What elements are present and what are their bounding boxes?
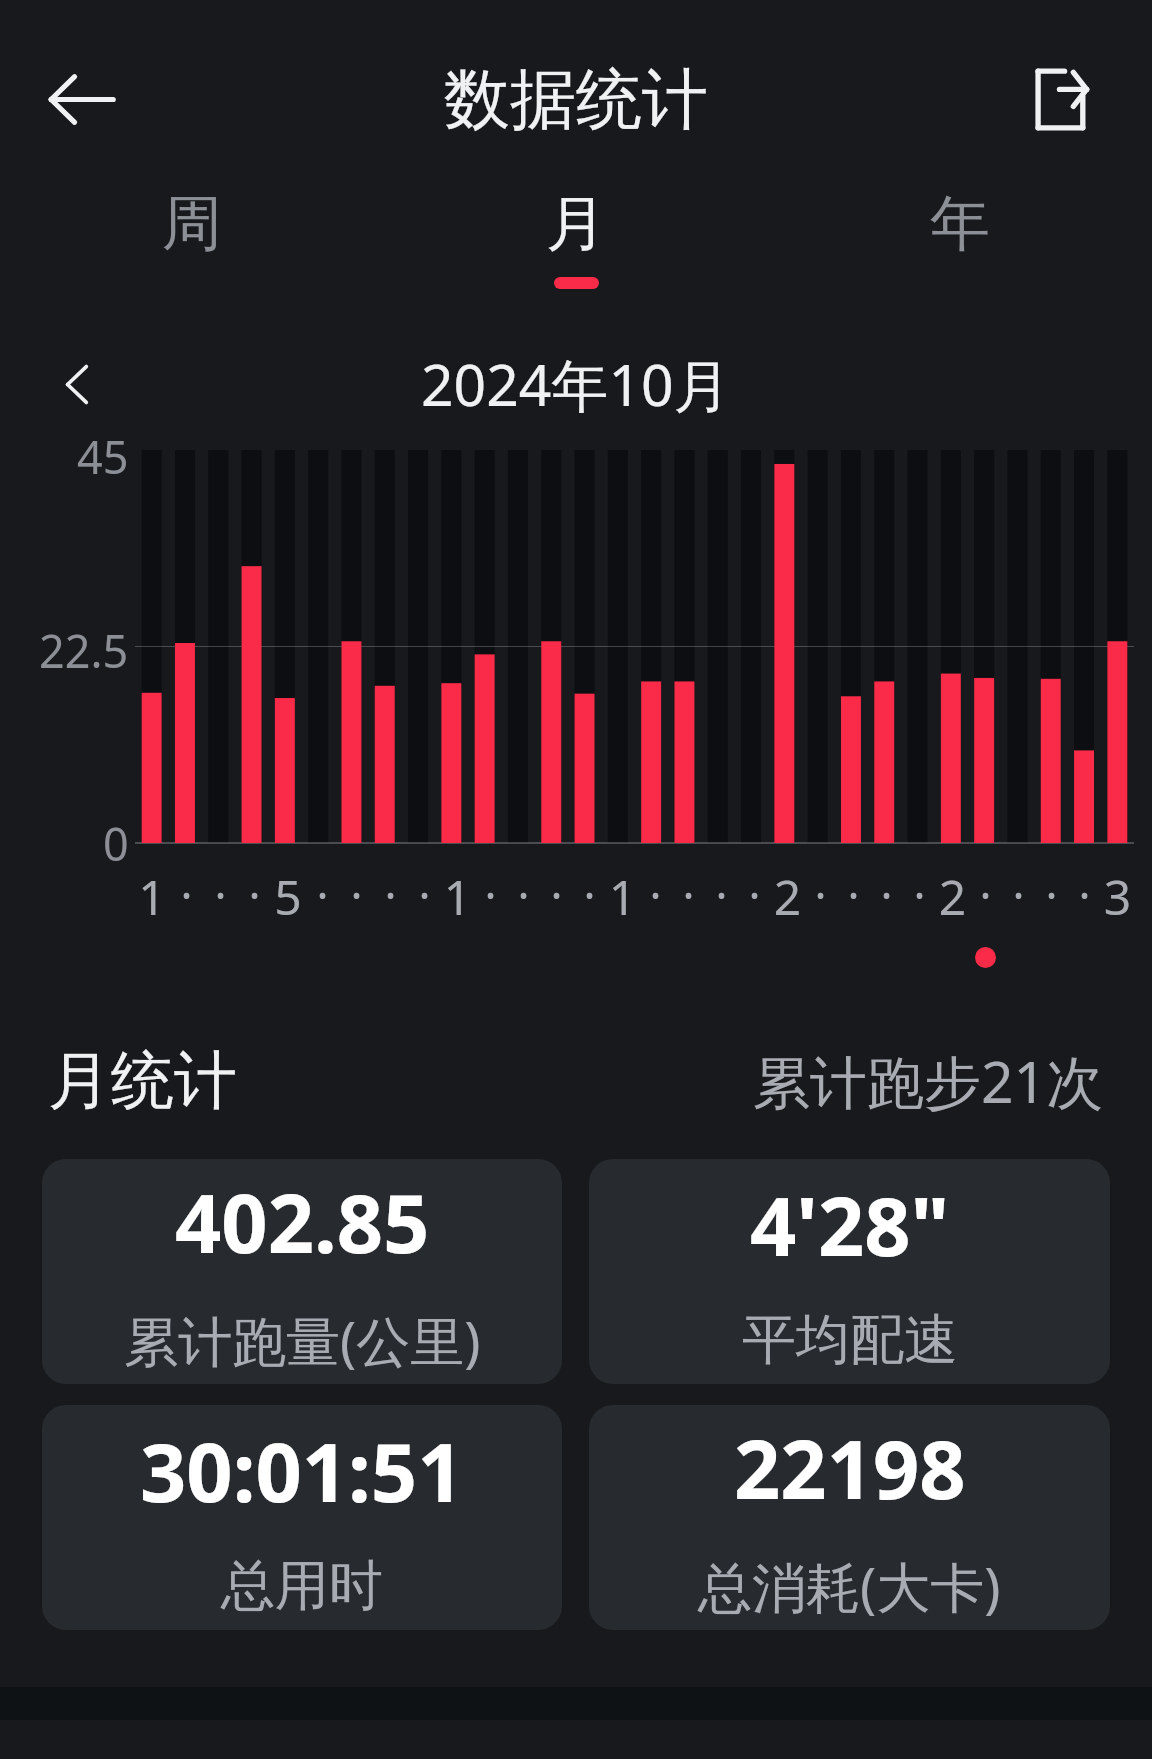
staticText: 数据统计 <box>444 58 708 141</box>
staticText: · <box>1078 864 1091 925</box>
staticText: 年 <box>930 186 990 262</box>
staticText: 月统计 <box>48 1041 237 1120</box>
staticText: · <box>682 864 695 925</box>
staticText: 月 <box>546 186 606 262</box>
staticText: 1 <box>138 864 166 929</box>
staticText: · <box>880 864 893 925</box>
staticText: · <box>748 864 761 925</box>
staticText: 10 <box>441 864 474 933</box>
staticText: · <box>248 864 261 925</box>
button[interactable]: 402.85 <box>42 1159 562 1384</box>
staticText: 30:01:51 <box>140 1415 464 1525</box>
button[interactable]: 年 <box>768 186 1152 306</box>
staticText: · <box>316 864 329 925</box>
staticText: 402.85 <box>175 1166 430 1276</box>
button[interactable]: Back <box>12 30 150 168</box>
staticText: · <box>1045 864 1058 925</box>
staticText: 20 <box>771 864 804 933</box>
staticText: · <box>517 864 530 925</box>
staticText: · <box>649 864 662 925</box>
staticText: 总消耗(大卡) <box>698 1549 1001 1623</box>
staticText: 累计跑步21次 <box>753 1042 1104 1120</box>
staticText: 22.5 <box>39 620 129 681</box>
staticText: 30 <box>1101 864 1134 933</box>
staticText: · <box>180 864 193 925</box>
staticText: 22198 <box>734 1412 966 1522</box>
staticText: · <box>715 864 728 925</box>
staticText: · <box>583 864 596 925</box>
button[interactable]: 4'28" <box>589 1159 1110 1384</box>
staticText: 25 <box>936 864 969 933</box>
button[interactable]: 30:01:51 <box>42 1405 562 1630</box>
button[interactable]: Share <box>990 30 1128 168</box>
staticText: 平均配速 <box>742 1306 958 1374</box>
staticText: 2024年10月 <box>421 345 731 423</box>
staticText: · <box>979 864 992 925</box>
staticText: · <box>847 864 860 925</box>
staticText: 总用时 <box>221 1552 383 1620</box>
staticText: 15 <box>606 864 639 933</box>
button[interactable]: 22198 <box>589 1405 1110 1630</box>
staticText: · <box>484 864 497 925</box>
staticText: · <box>384 864 397 925</box>
staticText: · <box>1012 864 1025 925</box>
staticText: · <box>814 864 827 925</box>
button[interactable]: 周 <box>0 186 384 306</box>
staticText: 0 <box>103 813 129 874</box>
button[interactable]: Previous month <box>30 336 126 432</box>
staticText: 周 <box>162 186 222 262</box>
staticText: · <box>418 864 431 925</box>
staticText: 4'28" <box>750 1169 950 1279</box>
button[interactable]: 月 <box>384 186 768 306</box>
staticText: 45 <box>77 426 129 487</box>
staticText: · <box>350 864 363 925</box>
staticText: · <box>913 864 926 925</box>
staticText: 累计跑量(公里) <box>124 1303 481 1377</box>
staticText: 5 <box>274 864 302 929</box>
staticText: · <box>214 864 227 925</box>
staticText: · <box>550 864 563 925</box>
